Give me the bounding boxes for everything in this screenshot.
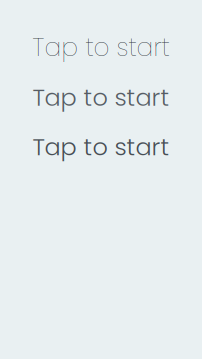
staticText: Tap to start — [32, 80, 169, 114]
staticText: Tap to start — [32, 130, 169, 164]
staticText: Tap to start — [32, 30, 169, 64]
